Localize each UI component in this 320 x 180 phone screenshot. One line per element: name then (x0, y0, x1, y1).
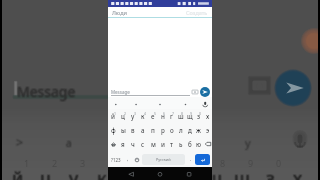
staticText: н (151, 166, 163, 180)
staticText: н (153, 166, 165, 180)
staticText: ц (121, 112, 125, 120)
button[interactable]: в (128, 123, 138, 137)
staticText: н (152, 166, 164, 180)
button[interactable]: ч (128, 137, 138, 151)
staticText: э (206, 126, 210, 134)
button[interactable]: Send (200, 87, 210, 97)
staticText: к (98, 166, 108, 180)
staticText: ц (40, 166, 52, 180)
staticText: 0 (276, 157, 282, 169)
staticText: ц (40, 165, 52, 180)
staticText: х (294, 166, 304, 180)
staticText: е (124, 166, 134, 180)
staticText: > (16, 134, 23, 150)
staticText: у (70, 165, 80, 180)
button[interactable]: Enter (195, 154, 210, 165)
button[interactable]: р (158, 123, 167, 137)
button[interactable]: Shift (108, 137, 118, 151)
staticText: у (69, 167, 79, 180)
staticText: 6 (163, 111, 166, 116)
button[interactable]: . (186, 154, 195, 165)
staticText: ц (39, 166, 51, 180)
staticText: у (68, 166, 78, 180)
button[interactable]: , (123, 154, 132, 165)
button[interactable]: 7 (167, 109, 176, 123)
button[interactable]: ь (176, 137, 185, 151)
button[interactable]: 0 (194, 109, 203, 123)
button[interactable]: Emoji (132, 154, 141, 165)
staticText: у (245, 135, 251, 150)
button[interactable]: Люди (108, 7, 212, 18)
button[interactable]: Message (111, 88, 190, 96)
button[interactable]: Backspace (203, 137, 212, 151)
button[interactable]: ж (194, 123, 203, 137)
staticText: е (126, 167, 136, 180)
staticText: г (183, 167, 191, 180)
button[interactable]: 3 (128, 109, 138, 123)
button[interactable]: 4 (138, 109, 148, 123)
button[interactable]: б (185, 137, 194, 151)
button[interactable]: т (167, 137, 176, 151)
button[interactable]: я (118, 137, 128, 151)
staticText: г (182, 167, 190, 180)
staticText: 3 (134, 111, 137, 116)
button[interactable]: д (185, 123, 194, 137)
button[interactable]: ?123 (108, 154, 123, 165)
staticText: с (141, 140, 145, 148)
button[interactable]: ф (108, 123, 118, 137)
staticText: a (67, 137, 73, 151)
staticText: 2 (124, 111, 127, 116)
button[interactable]: м (148, 137, 158, 151)
button[interactable]: 8 (176, 109, 185, 123)
staticText: у (69, 166, 79, 180)
button[interactable]: л (176, 123, 185, 137)
staticText: е (125, 167, 135, 180)
staticText: 6 (164, 157, 170, 169)
staticText: ш (206, 166, 223, 180)
staticText: й (13, 165, 25, 180)
button[interactable]: с (138, 137, 148, 151)
staticText: , (127, 156, 129, 163)
staticText: й (12, 165, 24, 180)
button[interactable]: Русский (142, 154, 185, 165)
staticText: к (96, 165, 106, 180)
button[interactable]: э (203, 123, 212, 137)
staticText: й (12, 166, 24, 180)
button[interactable]: ы (118, 123, 128, 137)
staticText: г (181, 165, 189, 180)
staticText: щ (233, 166, 250, 180)
button[interactable]: 1 (108, 109, 118, 123)
staticText: г (183, 166, 191, 180)
button[interactable]: Attach photo (191, 88, 199, 96)
staticText: у (70, 166, 80, 180)
staticText: щ (187, 112, 193, 120)
staticText: х (206, 112, 210, 120)
staticText: Message (18, 82, 77, 101)
staticText: г (182, 166, 190, 180)
button[interactable]: 5 (148, 109, 158, 123)
staticText: л (179, 126, 183, 134)
staticText: у (246, 135, 252, 150)
button[interactable]: о (167, 123, 176, 137)
button[interactable]: 6 (158, 109, 167, 123)
staticText: з (267, 165, 276, 180)
staticText: у (245, 134, 251, 149)
staticText: Message (18, 83, 77, 102)
staticText: 1 (114, 111, 117, 116)
button[interactable]: х (203, 109, 212, 123)
button[interactable]: ю (194, 137, 203, 151)
button[interactable]: и (158, 137, 167, 151)
staticText: з (265, 167, 274, 180)
staticText: у (69, 166, 79, 180)
staticText: е (125, 166, 135, 180)
button[interactable]: 2 (118, 109, 128, 123)
staticText: х (293, 166, 303, 180)
staticText: у (245, 135, 251, 150)
staticText: ч (131, 140, 135, 148)
button[interactable]: 9 (185, 109, 194, 123)
staticText: й (12, 166, 24, 180)
staticText: ю (196, 140, 202, 148)
button[interactable]: а (138, 123, 148, 137)
button[interactable]: п (148, 123, 158, 137)
staticText: a (67, 135, 73, 149)
